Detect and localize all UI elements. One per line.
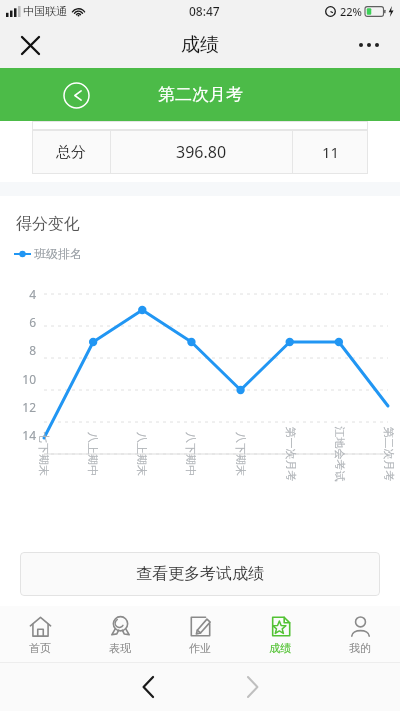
staticText: 第二次月考	[158, 84, 243, 105]
staticText: 表现	[109, 641, 131, 655]
staticText: 中国联通	[23, 4, 67, 18]
staticText: 08:47	[189, 3, 220, 19]
staticText: 作业	[189, 641, 211, 655]
button[interactable]: Forward	[230, 665, 274, 709]
staticText: 14	[22, 427, 36, 443]
button[interactable]: More options	[348, 24, 390, 66]
button[interactable]: 我的	[320, 607, 400, 662]
staticText: 我的	[349, 641, 371, 655]
staticText: 首页	[29, 641, 51, 655]
staticText: 11	[322, 142, 340, 162]
staticText: 八上期末	[135, 432, 149, 476]
button[interactable]: Back	[126, 665, 170, 709]
staticText: 12	[22, 399, 36, 415]
button[interactable]: Previous exam	[58, 77, 94, 113]
button[interactable]: 首页	[0, 607, 80, 662]
staticText: 10	[22, 371, 36, 387]
staticText: 6	[29, 314, 36, 330]
staticText: 4	[29, 286, 36, 302]
staticText: 成绩	[181, 33, 219, 57]
staticText: 八上期中	[86, 432, 100, 476]
button[interactable]: 查看更多考试成绩	[20, 552, 380, 596]
staticText: 七下期末	[37, 432, 51, 476]
button[interactable]: 成绩	[240, 607, 320, 662]
button[interactable]: 作业	[160, 607, 240, 662]
staticText: 总分	[56, 143, 86, 162]
staticText: 第二次月考	[381, 426, 395, 481]
staticText: 第一次月考	[283, 426, 297, 481]
staticText: 成绩	[269, 641, 291, 655]
staticText: 八下期末	[234, 432, 248, 476]
staticText: 得分变化	[16, 214, 80, 234]
staticText: 查看更多考试成绩	[136, 564, 264, 584]
button[interactable]: 表现	[80, 607, 160, 662]
staticText: 396.80	[176, 141, 227, 163]
staticText: 8	[29, 342, 36, 358]
staticText: 江地会考试	[332, 426, 346, 481]
button[interactable]: Close	[10, 25, 50, 65]
staticText: 八下期中	[184, 432, 198, 476]
staticText: 22%	[340, 4, 362, 19]
staticText: 班级排名	[34, 246, 82, 261]
